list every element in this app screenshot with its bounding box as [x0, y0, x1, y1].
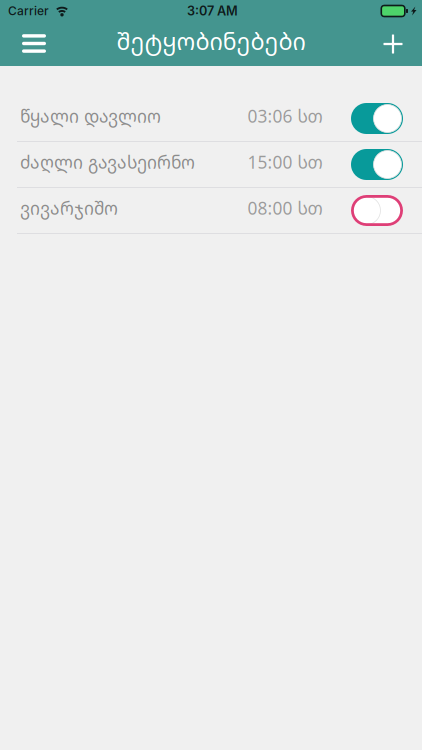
staticText: წყალი დავლიო — [20, 104, 161, 128]
staticText: 3:07 AM — [187, 3, 238, 19]
staticText: 03:06 სთ — [247, 104, 322, 128]
staticText: Carrier — [8, 4, 49, 18]
button[interactable]: Menu — [0, 22, 68, 66]
staticText: შეტყობინებები — [116, 25, 305, 57]
staticText: ვივარჯიშო — [20, 196, 118, 220]
button[interactable]: წყალი დავლიო — [0, 96, 422, 142]
staticText: ძაღლი გავასეირნო — [20, 150, 195, 174]
button[interactable]: Add reminder — [364, 22, 422, 66]
button[interactable]: ვივარჯიშო — [0, 188, 422, 234]
staticText: 08:00 სთ — [247, 196, 322, 220]
staticText: 15:00 სთ — [247, 150, 322, 174]
button[interactable]: ძაღლი გავასეირნო — [0, 142, 422, 188]
